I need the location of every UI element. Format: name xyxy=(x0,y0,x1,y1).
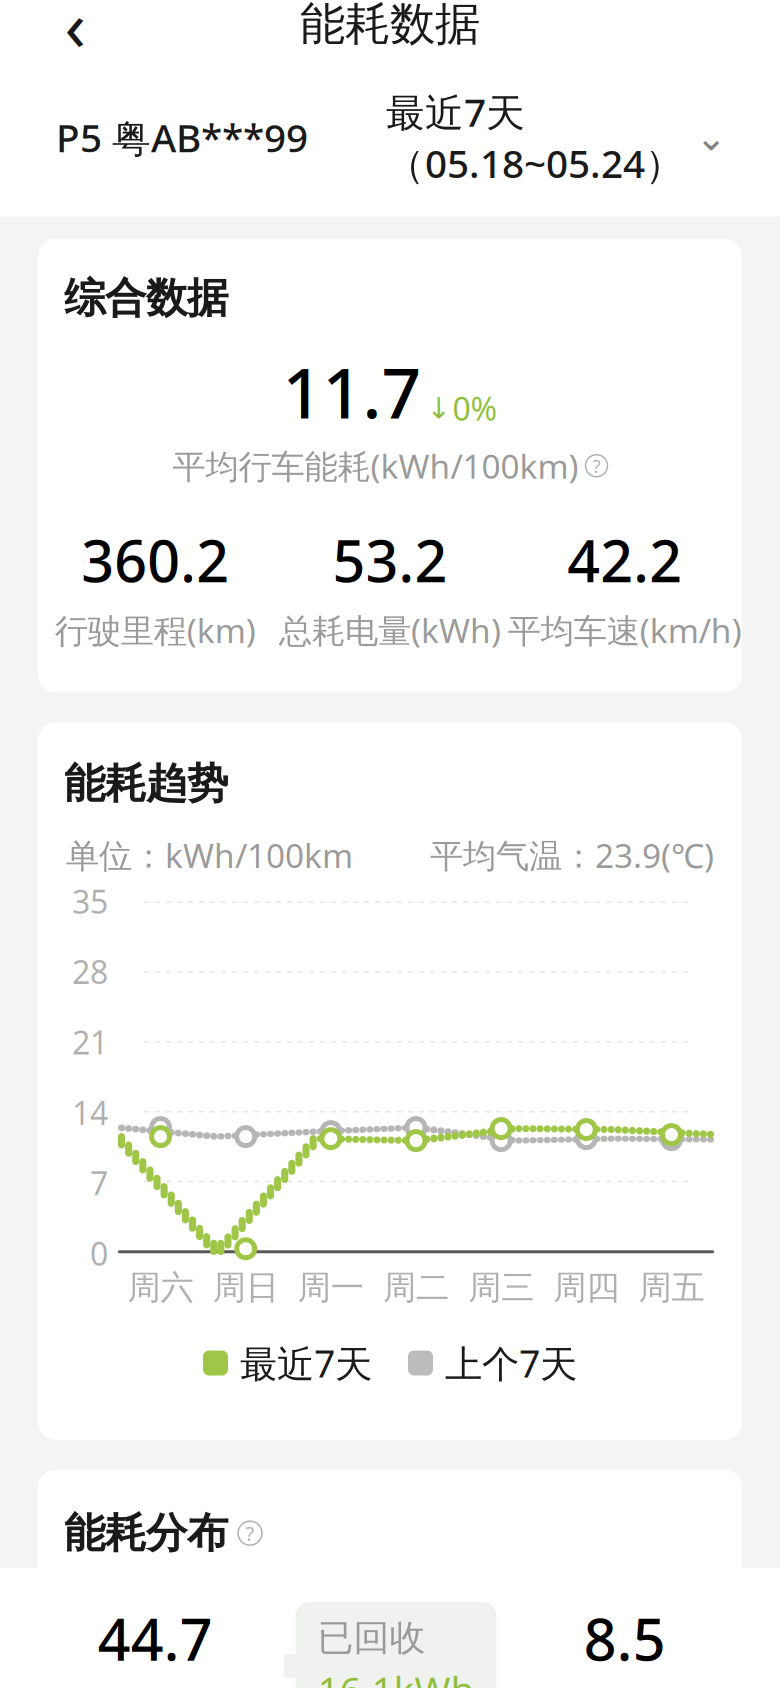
staticText: P5 粤AB***99 xyxy=(56,112,308,163)
staticText: ? xyxy=(592,453,600,478)
staticText: 平均车速(km/h) xyxy=(508,608,742,652)
staticText: 周二 xyxy=(383,1267,449,1308)
staticText: ⌄ xyxy=(695,116,726,159)
staticText: 单位：kWh/100km xyxy=(66,833,353,877)
staticText: 周六 xyxy=(128,1267,194,1308)
staticText: 周日 xyxy=(213,1267,279,1308)
staticText: ‹ xyxy=(64,0,85,70)
staticText: 能耗趋势 xyxy=(64,758,228,809)
staticText: 行驶里程(km) xyxy=(55,608,256,652)
staticText: 周四 xyxy=(553,1267,619,1308)
staticText: 周三 xyxy=(468,1267,534,1308)
staticText: 28 xyxy=(72,950,108,993)
staticText: ? xyxy=(245,1520,254,1546)
staticText: 0 xyxy=(90,1232,108,1274)
staticText: 11.7 xyxy=(282,345,421,438)
staticText: 能耗分布 xyxy=(64,1508,228,1559)
staticText: 最近7天 xyxy=(240,1338,372,1388)
button[interactable]: P5 粤AB***99 xyxy=(56,112,308,163)
staticText: 综合数据 xyxy=(64,273,228,323)
button[interactable]: Back xyxy=(38,0,112,61)
staticText: 平均行车能耗(kWh/100km) xyxy=(172,444,578,488)
staticText: 最近7天（05.18~05.24） xyxy=(386,86,684,189)
staticText: ↓ xyxy=(426,392,451,425)
staticText: 总耗电量(kWh) xyxy=(279,608,501,652)
staticText: 周一 xyxy=(298,1267,364,1308)
staticText: 53.2 xyxy=(332,522,447,598)
staticText: 能耗数据 xyxy=(300,0,480,52)
staticText: 7 xyxy=(90,1162,108,1204)
staticText: 已回收 xyxy=(317,1616,425,1660)
button[interactable]: 最近7天（05.18~05.24） xyxy=(386,86,724,189)
staticText: 44.7 xyxy=(98,1601,213,1677)
staticText: 周五 xyxy=(638,1267,704,1308)
staticText: 上个7天 xyxy=(445,1338,577,1388)
staticText: 21 xyxy=(72,1021,108,1063)
staticText: 360.2 xyxy=(81,522,229,598)
staticText: 平均气温：23.9(℃) xyxy=(430,833,714,877)
staticText: 0% xyxy=(452,387,497,430)
staticText: 8.5 xyxy=(584,1601,666,1677)
staticText: 16.1kWh xyxy=(317,1664,474,1688)
staticText: 14 xyxy=(72,1091,108,1134)
staticText: 42.2 xyxy=(567,522,682,598)
staticText: 35 xyxy=(72,880,108,922)
